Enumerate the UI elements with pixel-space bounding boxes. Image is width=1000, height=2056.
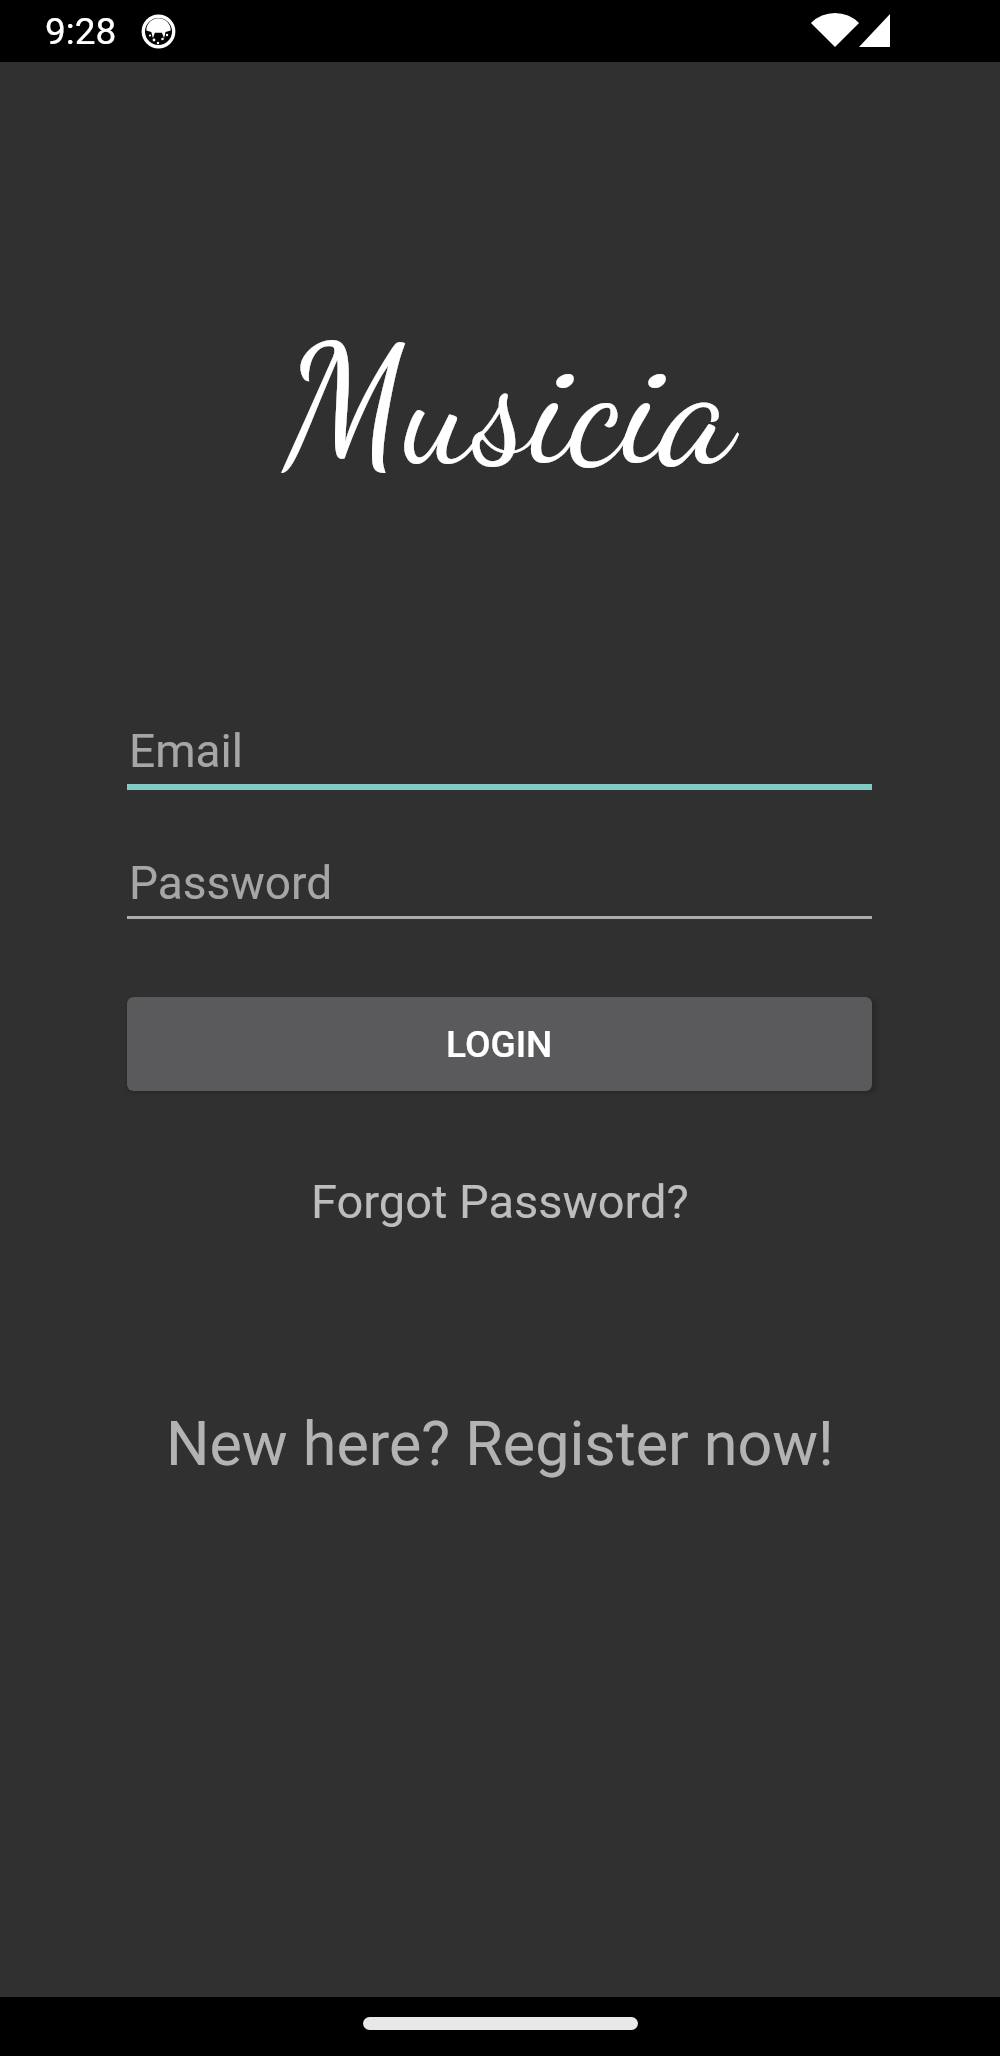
staticText: Musicia	[284, 309, 735, 505]
button[interactable]: Forgot Password?	[311, 1174, 689, 1229]
staticText: LOGIN	[446, 1023, 553, 1066]
staticText: Forgot Password?	[311, 1174, 689, 1229]
button[interactable]: Password	[127, 856, 872, 919]
staticText: 9:28	[45, 10, 117, 53]
staticText: Email	[129, 724, 243, 778]
button[interactable]: Email	[127, 724, 872, 790]
staticText: Password	[129, 856, 333, 910]
staticText: New here? Register now!	[166, 1408, 834, 1479]
button[interactable]: New here? Register now!	[166, 1408, 834, 1479]
button[interactable]: LOGIN	[127, 997, 872, 1091]
